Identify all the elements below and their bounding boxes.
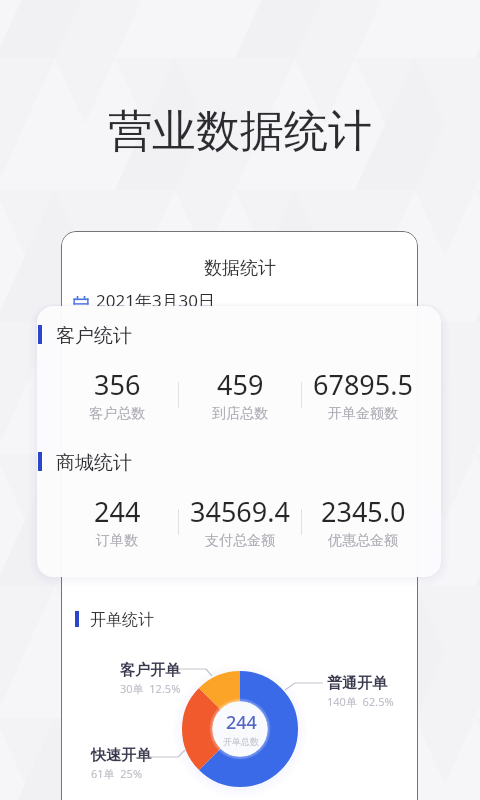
staticText: 30单 12.5% (120, 681, 181, 696)
staticText: 140单 62.5% (327, 694, 394, 709)
staticText: 支付总金额 (205, 532, 275, 550)
staticText: 34569.4 (190, 493, 290, 530)
button[interactable]: 客户统计 (37, 306, 441, 577)
other: Calendar (72, 292, 90, 310)
staticText: 2345.0 (321, 493, 406, 530)
staticText: 订单数 (96, 532, 138, 550)
staticText: 开单金额数 (328, 405, 398, 423)
staticText: 营业数据统计 (108, 104, 372, 159)
staticText: 2021年3月30日 (96, 289, 216, 312)
staticText: 数据统计 (204, 257, 276, 280)
staticText: 244 (226, 710, 257, 735)
staticText: 459 (217, 366, 264, 403)
staticText: 61单 25% (91, 766, 143, 781)
staticText: 商城统计 (56, 451, 132, 475)
staticText: 优惠总金额 (328, 532, 398, 550)
staticText: 普通开单 (327, 674, 387, 693)
staticText: 客户总数 (89, 405, 145, 423)
staticText: 客户统计 (56, 324, 132, 348)
staticText: 开单总数 (223, 736, 259, 747)
staticText: 67895.5 (313, 366, 413, 403)
staticText: 356 (94, 366, 141, 403)
staticText: 到店总数 (212, 405, 268, 423)
staticText: 244 (94, 493, 141, 530)
staticText: 开单统计 (90, 610, 154, 630)
staticText: 客户开单 (120, 661, 180, 680)
staticText: 快速开单 (91, 746, 151, 765)
